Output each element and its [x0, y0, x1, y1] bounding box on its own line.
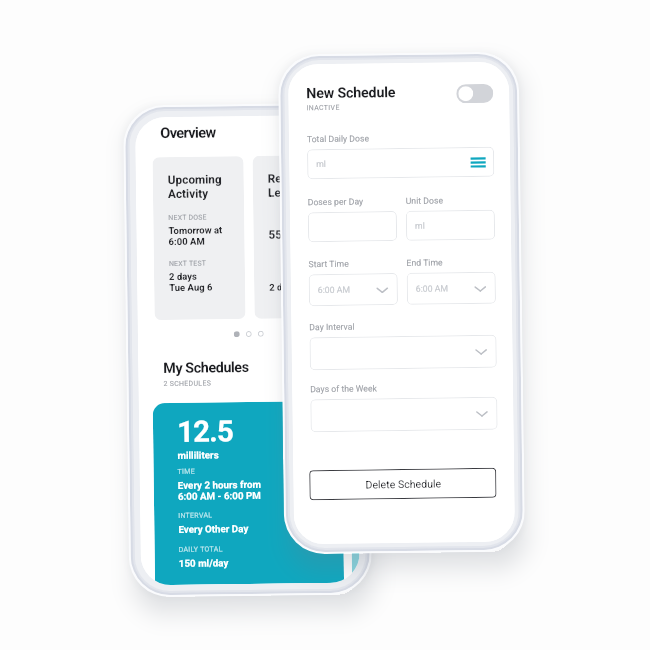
button[interactable]: Doses per Day [308, 211, 397, 242]
staticText: NEXT DOSE [168, 213, 207, 222]
staticText: INTERVAL [178, 511, 213, 520]
staticText: INACTIVE [306, 104, 340, 112]
staticText: 55% [268, 227, 292, 242]
button[interactable]: 12.5 [153, 401, 344, 585]
button[interactable]: Delete Schedule [309, 468, 497, 500]
staticText: NEXT TEST [169, 259, 207, 268]
staticText: End Time [406, 257, 443, 268]
staticText: Doses per Day [308, 196, 364, 207]
staticText: Level [268, 185, 297, 200]
staticText: 150 ml/day [179, 557, 229, 569]
button[interactable]: Reservoir [252, 155, 346, 319]
staticText: My Schedules [163, 359, 249, 377]
button[interactable]: End Time [407, 272, 496, 305]
staticText: ml [316, 159, 326, 169]
staticText: DAILY TOTAL [179, 545, 224, 554]
staticText: Activity [168, 186, 209, 201]
staticText: Every 2 hours from [178, 479, 262, 491]
staticText: 6:00 AM - 6:00 PM [178, 490, 261, 502]
staticText: 6:00 AM [318, 285, 351, 295]
button[interactable]: Unit Dose [406, 210, 495, 241]
staticText: 6:00 AM [416, 283, 449, 294]
staticText: Delete Schedule [365, 477, 441, 490]
staticText: Every Other Day [178, 523, 248, 535]
staticText: 6:00 AM [168, 235, 206, 247]
staticText: 2 days [269, 281, 297, 293]
button[interactable]: Start Time [309, 273, 398, 306]
button[interactable]: Days of the Week [310, 397, 498, 432]
staticText: Reservoir [268, 171, 319, 186]
button[interactable]: Total Daily Dose [307, 147, 494, 179]
staticText: New Schedule [306, 84, 396, 102]
staticText: 2 days [169, 271, 197, 282]
button[interactable] [350, 401, 360, 583]
staticText: TIME [177, 468, 196, 476]
staticText: Days of the Week [310, 383, 377, 394]
button[interactable]: Day Interval [309, 335, 497, 370]
staticText: milliliters [177, 449, 219, 461]
staticText: Upcoming [168, 172, 222, 187]
staticText: Overview [160, 123, 216, 141]
staticText: Unit Dose [406, 195, 444, 206]
staticText: Start Time [308, 259, 349, 269]
button[interactable]: Upcoming [152, 156, 246, 320]
button[interactable]: Toggle schedule active [456, 84, 493, 103]
staticText: Day Interval [309, 322, 355, 332]
staticText: Tomorrow at [168, 224, 222, 236]
staticText: 2 SCHEDULES [163, 379, 211, 388]
staticText: 12.5 [177, 414, 233, 450]
staticText: Tue Aug 6 [169, 281, 213, 293]
staticText: ml [415, 221, 425, 231]
staticText: Total Daily Dose [307, 133, 370, 144]
